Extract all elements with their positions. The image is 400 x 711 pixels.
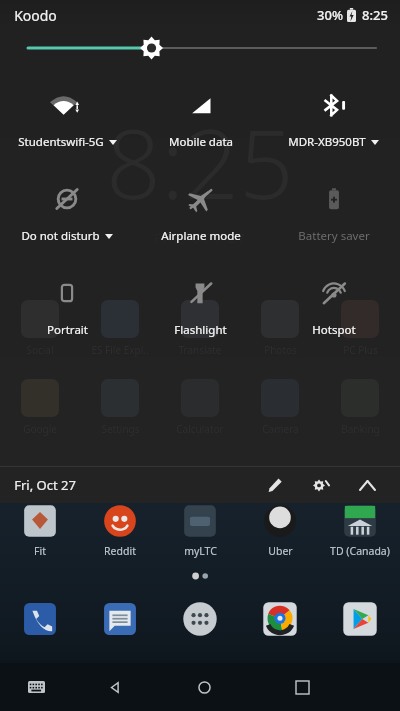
button[interactable]: Recent apps [253, 663, 351, 711]
staticText: Do not disturb [21, 228, 100, 244]
staticText: PC Plus [343, 343, 378, 357]
staticText: ES File Expl.. [91, 343, 149, 357]
button[interactable]: Mobile data [134, 84, 267, 154]
staticText: Fri, Oct 27 [14, 476, 76, 494]
staticText: Hotspot [312, 322, 356, 338]
button[interactable]: Brightness [10, 30, 390, 66]
staticText: 8:25 [106, 96, 294, 227]
button[interactable]: Back [73, 663, 155, 711]
button[interactable]: Fit [0, 503, 80, 558]
staticText: Studentswifi-5G [18, 134, 104, 150]
staticText: MDR-XB950BT [288, 134, 366, 150]
button[interactable]: Uber [240, 503, 320, 558]
button[interactable]: Portrait [0, 272, 134, 342]
staticText: Mobile data [169, 134, 233, 150]
button[interactable]: Phone [0, 600, 80, 638]
staticText: Uber [268, 544, 293, 558]
staticText: Photos [264, 343, 297, 357]
button[interactable]: TD (Canada) [320, 503, 400, 558]
staticText: Airplane mode [161, 228, 241, 244]
staticText: Fit [34, 544, 46, 558]
staticText: Koodo [14, 6, 57, 25]
button[interactable]: Hotspot [267, 272, 400, 342]
button[interactable]: Airplane mode [134, 178, 267, 248]
button[interactable]: Play Store [320, 600, 400, 638]
button[interactable]: Edit tiles [260, 470, 290, 500]
button[interactable]: Home [155, 663, 253, 711]
button[interactable]: Chrome [240, 600, 320, 638]
button[interactable]: Messages [80, 600, 160, 638]
button[interactable]: Studentswifi-5G [0, 84, 134, 154]
staticText: TD (Canada) [330, 544, 390, 558]
staticText: 30% [317, 6, 343, 24]
button[interactable]: Collapse [352, 470, 382, 500]
button[interactable]: Settings [304, 468, 338, 502]
staticText: 8:25 [362, 6, 388, 24]
staticText: myLTC [184, 544, 217, 558]
staticText: FRI, OCT 27 [154, 229, 247, 247]
staticText: Battery saver [298, 228, 370, 244]
button[interactable]: Reddit [80, 503, 160, 558]
button[interactable]: myLTC [160, 503, 240, 558]
staticText: Reddit [104, 544, 136, 558]
button[interactable]: Battery saver [267, 178, 400, 248]
staticText: Portrait [47, 322, 88, 338]
button[interactable]: MDR-XB950BT [267, 84, 400, 154]
button[interactable]: Switch keyboard [0, 663, 73, 711]
button[interactable]: Flashlight [134, 272, 267, 342]
button[interactable]: Do not disturb [0, 178, 134, 248]
staticText: Flashlight [174, 322, 227, 338]
button[interactable]: Apps [160, 600, 240, 638]
